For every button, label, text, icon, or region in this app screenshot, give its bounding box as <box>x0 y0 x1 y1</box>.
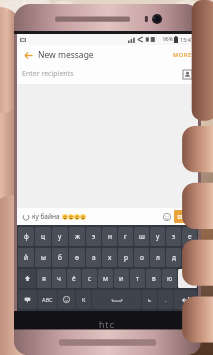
staticText: э <box>92 232 96 241</box>
button[interactable]: Key <box>142 290 157 309</box>
button[interactable]: у <box>52 227 68 246</box>
button[interactable]: й <box>18 248 34 267</box>
button[interactable]: с <box>82 269 97 288</box>
button[interactable]: ц <box>35 227 51 246</box>
button[interactable]: л <box>150 248 165 267</box>
staticText: ш <box>139 232 145 241</box>
button[interactable]: н <box>102 227 117 246</box>
button[interactable]: ө <box>69 248 85 267</box>
button[interactable]: а <box>86 248 101 267</box>
staticText: л <box>156 253 160 262</box>
button[interactable]: я <box>37 269 51 288</box>
staticText: б <box>58 253 62 262</box>
button[interactable]: е <box>182 227 197 246</box>
staticText: ё <box>72 274 76 283</box>
button[interactable]: з <box>166 227 181 246</box>
staticText: SEND <box>177 213 192 220</box>
button[interactable]: Key <box>18 269 36 288</box>
button[interactable]: ч <box>52 269 66 288</box>
button[interactable]: Emoji <box>161 211 172 222</box>
staticText: ө <box>75 253 79 262</box>
staticText: ц <box>41 232 45 241</box>
button[interactable]: Key <box>76 290 91 309</box>
button[interactable]: Enter recipients <box>22 64 193 84</box>
button[interactable]: ё <box>67 269 81 288</box>
staticText: з <box>172 232 176 241</box>
button[interactable]: п <box>182 248 197 267</box>
button[interactable]: ф <box>18 227 34 246</box>
button[interactable]: э <box>86 227 101 246</box>
button[interactable]: SEND <box>174 210 195 223</box>
button[interactable]: ы <box>35 248 51 267</box>
button[interactable]: Key <box>38 290 57 309</box>
staticText: й <box>24 253 29 262</box>
button[interactable]: г <box>118 227 133 246</box>
staticText: с <box>88 274 92 283</box>
staticText: New message <box>38 49 94 61</box>
staticText: 15:47 <box>180 36 195 43</box>
staticText: н <box>108 232 112 241</box>
button[interactable]: Attach <box>20 211 31 222</box>
staticText: . <box>165 296 167 303</box>
staticText: р <box>124 253 128 262</box>
button[interactable]: Add contact <box>182 69 193 80</box>
button[interactable]: Key <box>174 290 197 309</box>
button[interactable]: ж <box>69 227 85 246</box>
button[interactable]: ш <box>134 227 149 246</box>
button[interactable]: и <box>114 269 129 288</box>
staticText: д <box>172 253 176 262</box>
staticText: у <box>58 232 62 241</box>
staticText: г <box>124 232 127 241</box>
staticText: у <box>156 232 160 241</box>
button[interactable]: Key <box>178 269 197 288</box>
staticText: п <box>188 253 192 262</box>
button[interactable]: р <box>118 248 133 267</box>
button[interactable]: в <box>146 269 161 288</box>
button[interactable]: б <box>52 248 68 267</box>
staticText: в <box>152 274 156 283</box>
staticText: ќу байна <box>32 212 60 221</box>
button[interactable]: д <box>166 248 181 267</box>
button[interactable]: MORE <box>171 49 194 61</box>
button[interactable]: о <box>134 248 149 267</box>
button[interactable]: Key <box>58 290 75 309</box>
staticText: ф <box>24 232 29 241</box>
staticText: ж <box>75 232 80 241</box>
staticText: м <box>103 274 108 283</box>
button[interactable]: ю <box>162 269 177 288</box>
staticText: е <box>188 232 192 241</box>
staticText: ч <box>57 274 61 283</box>
staticText: ы <box>41 253 46 262</box>
button[interactable]: Key <box>158 290 173 309</box>
staticText: я <box>42 274 46 283</box>
staticText: а <box>92 253 96 262</box>
staticText: и <box>119 274 124 283</box>
staticText: MORE <box>173 51 192 59</box>
staticText: ABC <box>42 296 53 303</box>
staticText: ю <box>167 274 173 283</box>
staticText: К <box>82 296 86 303</box>
button[interactable]: т <box>130 269 145 288</box>
button[interactable]: Key <box>92 290 141 309</box>
staticText: о <box>140 253 144 262</box>
staticText: Enter recipients <box>22 69 74 79</box>
button[interactable]: у <box>150 227 165 246</box>
staticText: 96% <box>163 36 173 43</box>
button[interactable]: м <box>98 269 113 288</box>
staticText: х <box>108 253 112 262</box>
button[interactable]: Back <box>21 48 35 62</box>
staticText: htc <box>99 318 116 330</box>
staticText: т <box>136 274 140 283</box>
button[interactable]: х <box>102 248 117 267</box>
button[interactable]: Key <box>18 290 37 309</box>
staticText: ь <box>148 296 151 303</box>
